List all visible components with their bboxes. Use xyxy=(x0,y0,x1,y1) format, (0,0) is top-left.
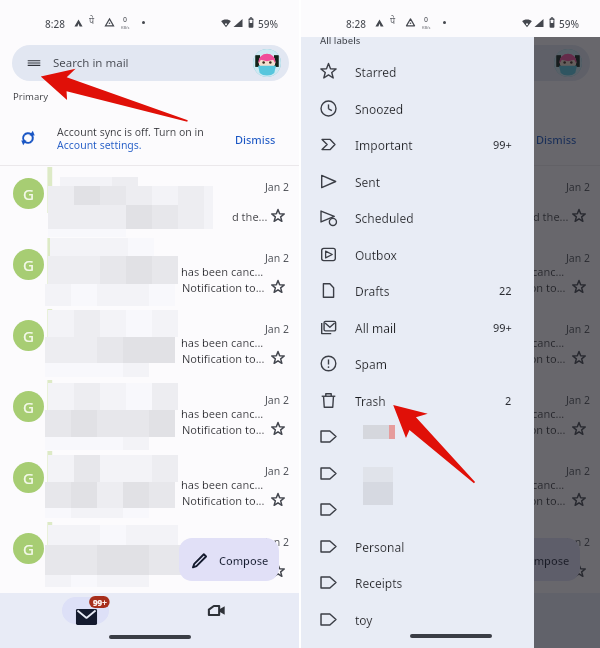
staticText: Jan 2 xyxy=(265,322,289,336)
staticText: Compose xyxy=(219,553,269,568)
button[interactable]: Compose xyxy=(480,538,580,581)
button[interactable]: Sent xyxy=(301,163,534,200)
staticText: Primary xyxy=(13,90,49,103)
other: Star xyxy=(271,209,285,223)
button[interactable]: toy xyxy=(301,601,534,638)
button[interactable]: Outbox xyxy=(301,236,534,273)
staticText: G xyxy=(23,468,34,488)
button[interactable]: G xyxy=(0,308,299,379)
staticText: Jan 2 xyxy=(566,251,590,265)
button[interactable]: Important xyxy=(301,126,534,163)
button[interactable]: G xyxy=(0,379,299,450)
button[interactable]: G xyxy=(301,237,600,308)
staticText: 99+ xyxy=(93,597,107,608)
staticText: G xyxy=(23,397,34,417)
button[interactable]: Dismiss xyxy=(530,126,583,153)
staticText: Starred xyxy=(355,64,397,80)
staticText: Jan 2 xyxy=(566,464,590,478)
staticText: G xyxy=(23,255,34,275)
button[interactable]: Snoozed xyxy=(301,90,534,127)
other: Star xyxy=(572,564,586,578)
staticText: All mail xyxy=(355,320,397,336)
staticText: G xyxy=(324,397,335,417)
button[interactable]: G xyxy=(0,166,299,237)
staticText: 99+ xyxy=(493,320,512,335)
staticText: Outbox xyxy=(355,247,397,263)
button[interactable]: Personal xyxy=(301,528,534,565)
staticText: 2 xyxy=(505,393,512,408)
button[interactable] xyxy=(301,455,534,492)
button[interactable]: G xyxy=(301,166,600,237)
staticText: KB/s xyxy=(121,25,130,30)
button[interactable]: Spam xyxy=(301,345,534,382)
staticText: 0 xyxy=(123,15,128,25)
button[interactable]: G xyxy=(0,521,299,592)
staticText: G xyxy=(324,184,335,204)
staticText: has been canc... xyxy=(181,264,264,279)
button[interactable]: G xyxy=(301,379,600,450)
staticText: Notification to... xyxy=(182,351,265,366)
staticText: Jan 2 xyxy=(265,180,289,194)
staticText: All labels xyxy=(320,37,361,47)
staticText: Jan 2 xyxy=(566,322,590,336)
staticText: has been canc... xyxy=(482,548,565,563)
staticText: Dismiss xyxy=(235,132,276,147)
staticText: Account settings. xyxy=(57,138,142,152)
staticText: 59% xyxy=(258,17,278,31)
staticText: Personal xyxy=(355,539,405,555)
other: Star xyxy=(572,351,586,365)
staticText: G xyxy=(324,468,335,488)
other: Open navigation drawer xyxy=(27,58,41,68)
staticText: Jan 2 xyxy=(265,464,289,478)
button[interactable]: Meet xyxy=(494,597,541,624)
button[interactable]: All mail xyxy=(301,309,534,346)
staticText: has been canc... xyxy=(482,335,565,350)
button[interactable]: Starred xyxy=(301,53,534,90)
staticText: Sent xyxy=(355,174,381,190)
staticText: G xyxy=(23,184,34,204)
button[interactable]: Meet xyxy=(193,597,240,624)
button[interactable]: Receipts xyxy=(301,564,534,601)
staticText: Scheduled xyxy=(355,210,414,226)
button[interactable]: G xyxy=(0,450,299,521)
staticText: Notification to... xyxy=(483,351,566,366)
other: Star xyxy=(572,280,586,294)
button[interactable] xyxy=(301,418,534,455)
other: Star xyxy=(271,422,285,436)
button[interactable]: Mail xyxy=(62,597,109,624)
button[interactable]: G xyxy=(0,237,299,308)
staticText: Notification to... xyxy=(483,280,566,295)
staticText: Notification to... xyxy=(483,564,566,579)
staticText: Jan 2 xyxy=(265,535,289,549)
staticText: has been canc... xyxy=(181,335,264,350)
staticText: Search in mail xyxy=(354,55,430,71)
staticText: G xyxy=(324,326,335,346)
button[interactable] xyxy=(301,491,534,528)
button[interactable]: G xyxy=(301,308,600,379)
button[interactable]: G xyxy=(301,450,600,521)
button[interactable]: Drafts xyxy=(301,272,534,309)
staticText: 8:28 xyxy=(45,17,65,31)
staticText: has been canc... xyxy=(181,406,264,421)
staticText: Spam xyxy=(355,356,387,372)
staticText: Account settings. xyxy=(358,138,443,152)
button[interactable]: Open navigation drawer xyxy=(12,45,289,81)
other: Star xyxy=(271,493,285,507)
button[interactable]: Trash xyxy=(301,382,534,419)
staticText: पे xyxy=(89,14,95,26)
staticText: toy xyxy=(355,612,373,628)
button[interactable]: Mail xyxy=(363,597,410,624)
other: Open navigation drawer xyxy=(328,58,342,68)
button[interactable]: Scheduled xyxy=(301,199,534,236)
button[interactable]: Dismiss xyxy=(229,126,282,153)
button[interactable]: Compose xyxy=(179,538,279,581)
staticText: Notification to... xyxy=(483,493,566,508)
other: Star xyxy=(271,351,285,365)
button[interactable]: G xyxy=(301,521,600,592)
staticText: G xyxy=(23,326,34,346)
staticText: Notification to... xyxy=(483,422,566,437)
button[interactable]: Open navigation drawer xyxy=(313,45,590,81)
staticText: Trash xyxy=(355,393,386,409)
staticText: 0 xyxy=(424,15,429,25)
staticText: 99+ xyxy=(493,137,512,152)
